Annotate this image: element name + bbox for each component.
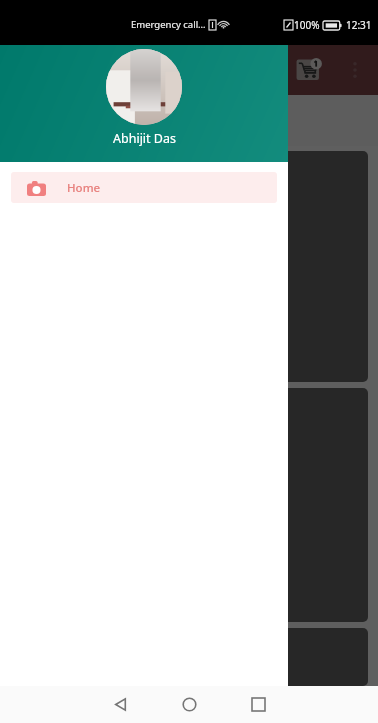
staticText: 100% xyxy=(294,18,320,32)
button[interactable]: Home xyxy=(169,686,209,723)
staticText: ACTIVE WEAR xyxy=(150,111,261,131)
button[interactable]: Recents xyxy=(238,686,278,723)
staticText: 12:31 xyxy=(346,18,372,32)
button[interactable] xyxy=(10,151,368,382)
button[interactable]: Home xyxy=(11,172,277,203)
button[interactable] xyxy=(10,388,368,622)
button[interactable] xyxy=(10,628,368,686)
staticText: Abhijit Das xyxy=(113,130,176,147)
button[interactable]: Abhijit Das xyxy=(0,45,288,162)
staticText: Home xyxy=(67,180,101,196)
button[interactable]: Back xyxy=(100,686,140,723)
button[interactable]: Cart xyxy=(295,55,325,85)
staticText: Emergency call… xyxy=(131,18,206,31)
